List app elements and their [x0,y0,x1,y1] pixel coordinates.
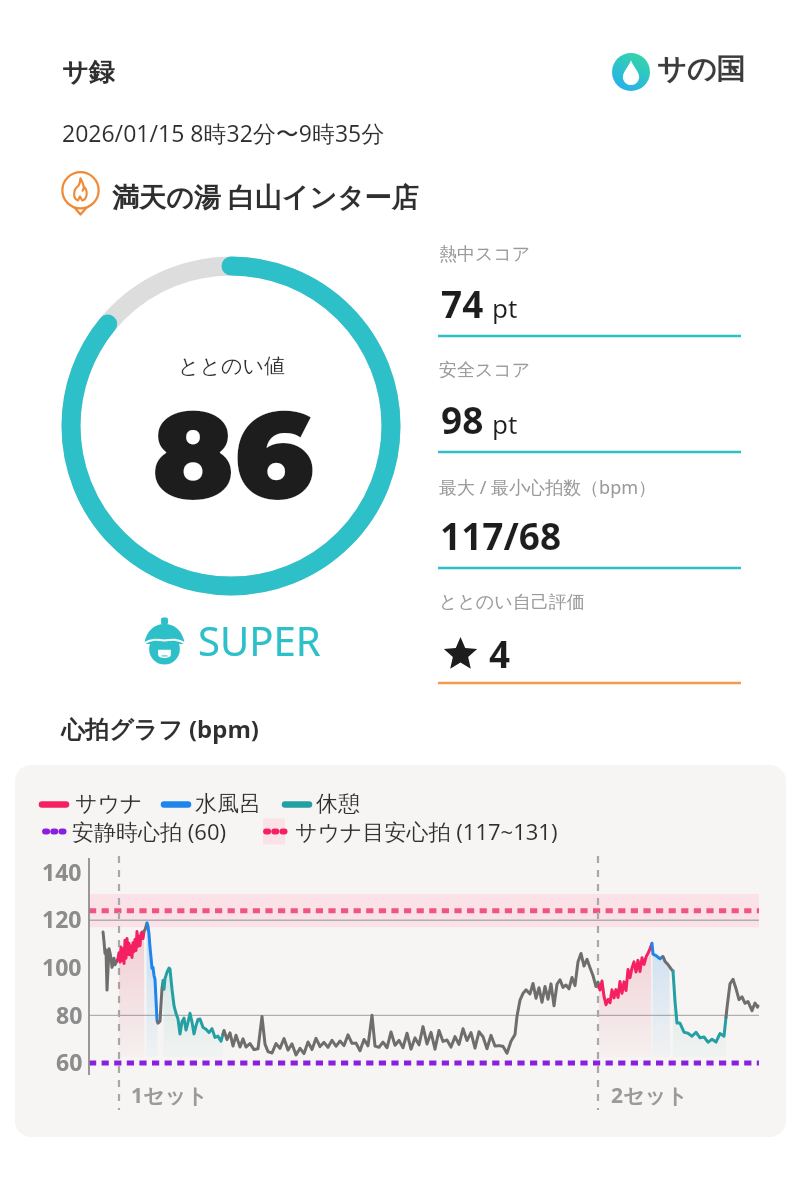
staticText: 120 [42,903,82,934]
staticText: 心拍グラフ (bpm) [61,712,259,745]
staticText: 2026/01/15 8時32分〜9時35分 [62,117,385,148]
staticText: サウナ目安心拍 (117~131) [295,816,558,846]
staticText: 80 [56,999,83,1030]
staticText: 2セット [611,1081,688,1110]
staticText: 休憩 [316,790,360,818]
staticText: 4 [489,628,511,678]
staticText: 86 [152,381,315,528]
staticText: ととのい値 [178,353,285,379]
button[interactable]: 最大 / 最小心拍数 117/68 [438,472,742,572]
button[interactable]: 満天の湯 白山インター店 [58,170,426,218]
staticText: ととのい自己評価 [439,591,585,614]
staticText: 水風呂 [195,790,261,818]
staticText: pt [492,406,518,441]
button[interactable]: 心拍グラフ [15,765,786,1137]
staticText: 100 [42,951,82,982]
staticText: 60 [56,1046,83,1077]
staticText: サの国 [657,51,746,88]
button[interactable]: 熱中スコア 74 pt [438,240,742,340]
button[interactable]: 安全スコア 98 pt [438,356,742,456]
staticText: 最大 / 最小心拍数（bpm） [439,475,657,500]
staticText: 安静時心拍 (60) [72,816,227,846]
staticText: 74 [441,278,484,328]
staticText: 熱中スコア [439,243,531,266]
staticText: サウナ [75,790,143,818]
button[interactable]: ととのい自己評価 ★4 [438,587,742,687]
button[interactable]: サの国 [611,48,745,93]
staticText: pt [492,290,518,325]
staticText: 安全スコア [439,359,531,382]
staticText: 140 [42,856,82,887]
button[interactable]: ととのい値 86 SUPER [61,256,401,596]
staticText: 117/68 [440,510,562,560]
staticText: サ録 [62,56,115,89]
staticText: 満天の湯 白山インター店 [112,178,419,215]
staticText: SUPER [198,613,321,667]
staticText: 1セット [131,1081,208,1110]
staticText: 98 [441,394,484,444]
